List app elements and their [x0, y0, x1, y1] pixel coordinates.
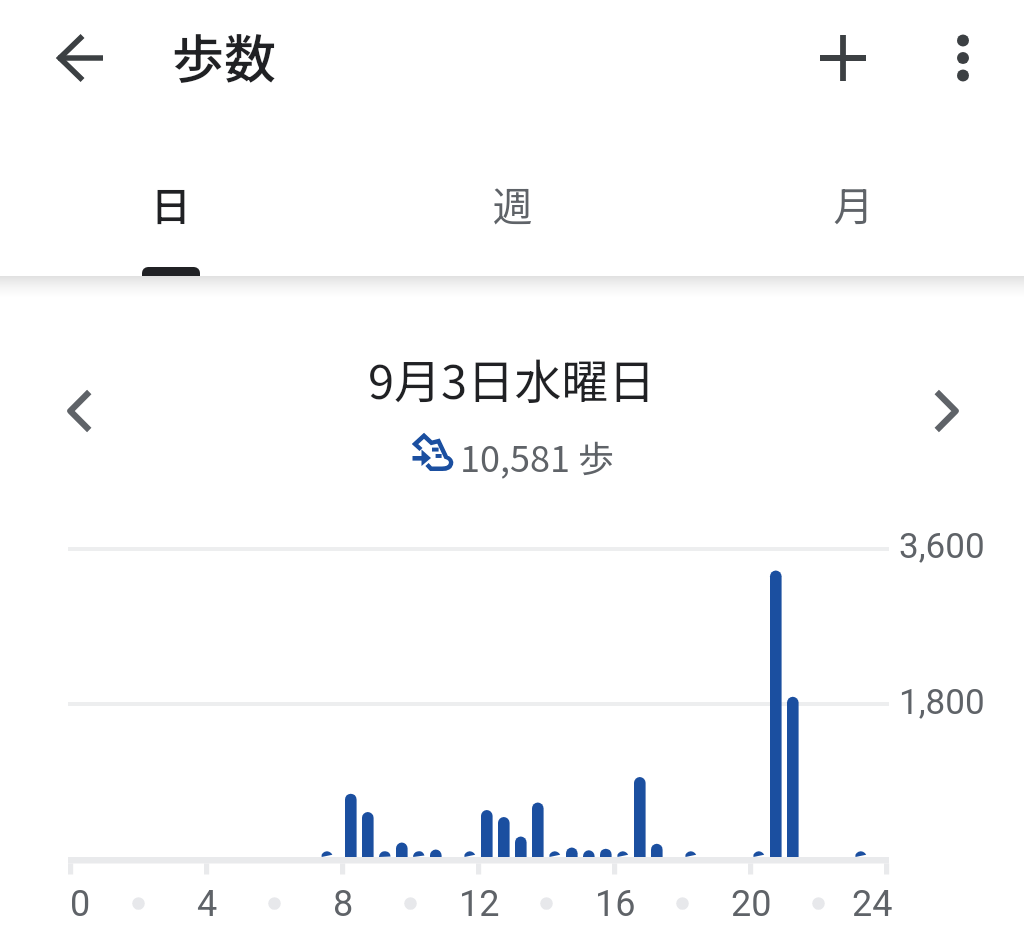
button[interactable]: Next day	[913, 378, 979, 444]
staticText: 20	[731, 883, 772, 925]
button[interactable]: More options	[930, 25, 996, 91]
staticText: 24	[852, 883, 893, 925]
staticText: 16	[595, 883, 636, 925]
button[interactable]: Back	[47, 25, 113, 91]
staticText: 日	[0, 175, 342, 233]
staticText: 歩数	[172, 18, 277, 93]
staticText: 月	[683, 175, 1024, 233]
staticText: 10,581 歩	[460, 430, 614, 480]
staticText: 9月3日水曜日	[368, 344, 656, 412]
button[interactable]: 月	[683, 116, 1024, 277]
staticText: 8	[333, 883, 354, 925]
button[interactable]: 週	[342, 116, 683, 277]
button[interactable]: Add	[810, 25, 876, 91]
staticText: 週	[342, 175, 683, 233]
button[interactable]: 日	[0, 116, 342, 277]
button[interactable]: Previous day	[47, 378, 113, 444]
staticText: 3,600	[899, 526, 985, 567]
staticText: 12	[459, 883, 500, 925]
staticText: 1,800	[899, 682, 985, 723]
staticText: 4	[197, 883, 218, 925]
staticText: 0	[70, 883, 91, 925]
